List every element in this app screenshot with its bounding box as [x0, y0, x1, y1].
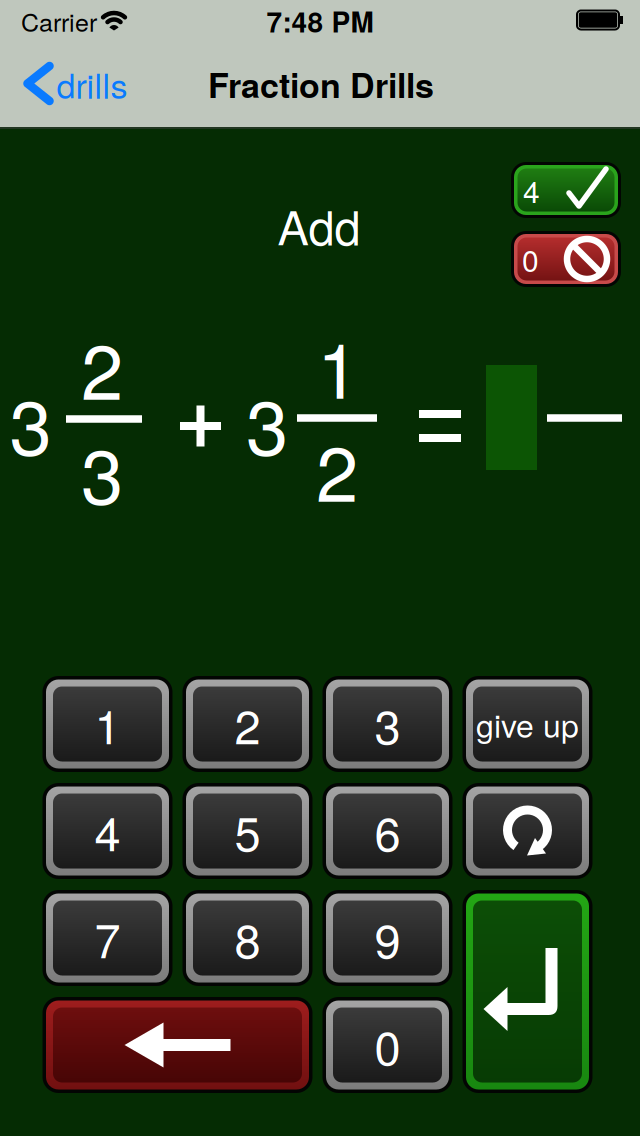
button[interactable]: Enter — [462, 890, 592, 1093]
button[interactable]: 2 — [182, 676, 312, 772]
staticText: 7:48 PM — [266, 1, 373, 41]
button[interactable]: 7 — [42, 890, 172, 986]
staticText: 4 — [523, 168, 540, 211]
button[interactable]: 0 — [322, 997, 452, 1093]
button[interactable]: 1 — [42, 676, 172, 772]
staticText: 9 — [374, 904, 400, 972]
staticText: 3 — [246, 369, 288, 477]
button[interactable]: 6 — [322, 783, 452, 879]
staticText: Add — [277, 191, 360, 259]
staticText: 1 — [317, 312, 359, 420]
button[interactable]: Backspace — [42, 997, 312, 1093]
staticText: 3 — [374, 690, 400, 758]
button[interactable]: 8 — [182, 890, 312, 986]
staticText: 4 — [94, 797, 120, 865]
staticText: drills — [56, 60, 127, 108]
staticText: 3 — [81, 418, 123, 526]
button[interactable]: 4 — [42, 783, 172, 879]
staticText: 0 — [374, 1011, 400, 1079]
button[interactable]: 9 — [322, 890, 452, 986]
staticText: Carrier — [21, 3, 97, 39]
staticText: 1 — [94, 690, 120, 758]
button[interactable]: 3 — [322, 676, 452, 772]
button[interactable]: drills — [22, 60, 127, 108]
button[interactable]: give up — [462, 676, 592, 772]
staticText: 6 — [374, 797, 400, 865]
button[interactable]: 5 — [182, 783, 312, 879]
staticText: 3 — [9, 369, 51, 477]
staticText: 0 — [522, 237, 539, 280]
staticText: 2 — [81, 313, 123, 421]
staticText: 8 — [234, 904, 260, 972]
staticText: 2 — [234, 690, 260, 758]
staticText: Fraction Drills — [208, 60, 434, 108]
staticText: 7 — [94, 904, 120, 972]
button[interactable]: Start over — [462, 783, 592, 879]
staticText: give up — [476, 701, 579, 747]
staticText: 5 — [234, 797, 260, 865]
staticText: 2 — [316, 415, 358, 523]
